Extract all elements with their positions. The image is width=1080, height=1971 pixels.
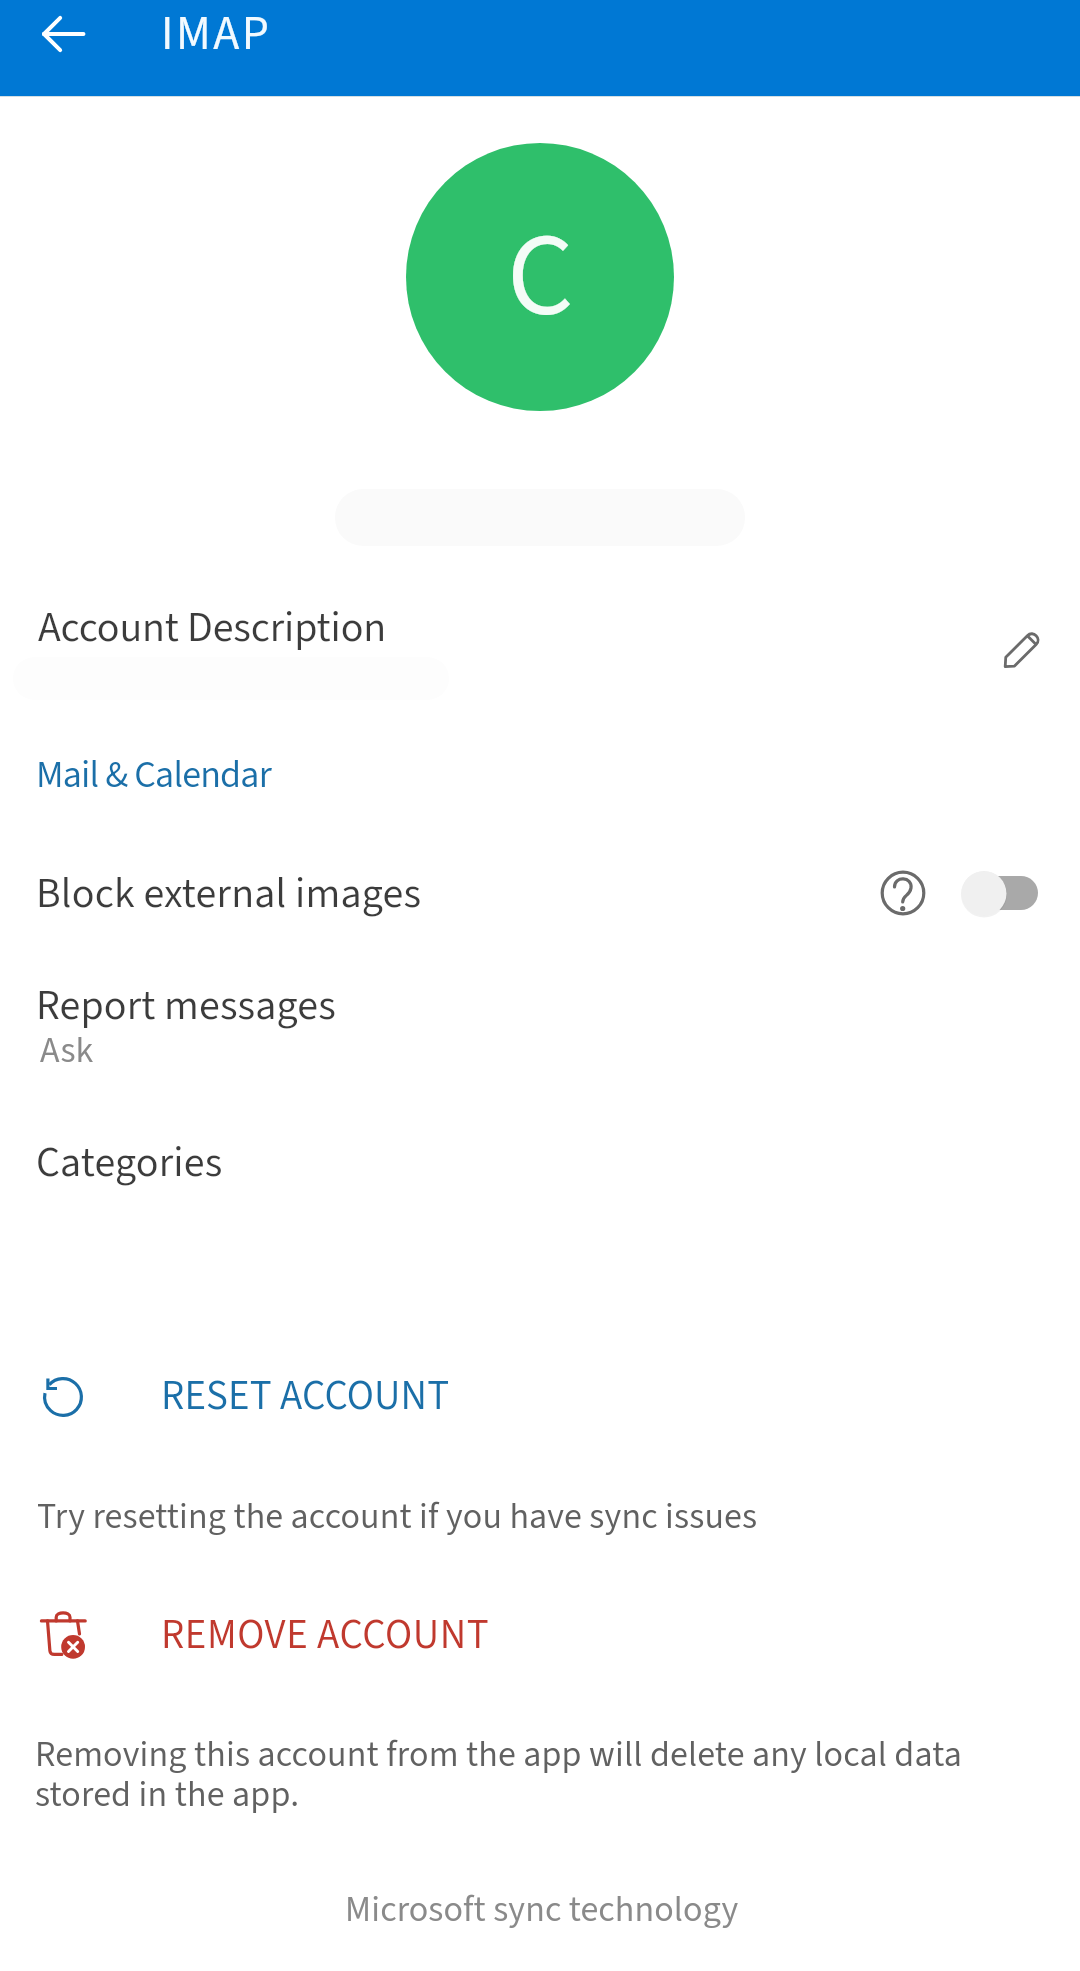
button[interactable]: Account Description [0,578,1080,682]
button[interactable]: Report messages [0,960,1080,1080]
staticText: RESET ACCOUNT [161,1367,450,1425]
button[interactable]: Edit account description [985,614,1057,686]
button[interactable]: RESET ACCOUNT [0,1356,1080,1442]
staticText: Microsoft sync technology [345,1884,739,1935]
staticText: IMAP [161,0,272,68]
staticText: Account Description [38,598,387,658]
staticText: Report messages [36,976,336,1036]
staticText: Ask [40,1025,94,1076]
button[interactable]: Categories [0,1118,1080,1214]
button[interactable]: Back [20,10,92,82]
staticText: C [507,194,574,361]
button[interactable]: Help about blocking external images [869,859,937,927]
staticText: Try resetting the account if you have sy… [37,1491,758,1542]
staticText: REMOVE ACCOUNT [161,1606,490,1664]
staticText: Categories [36,1133,223,1193]
staticText: Removing this account from the app will … [35,1729,975,1820]
button[interactable]: REMOVE ACCOUNT [0,1596,1080,1682]
button[interactable]: Block external images toggle, off [958,868,1043,918]
staticText: Mail & Calendar [36,748,271,802]
staticText: Block external images [36,864,422,924]
button[interactable]: Block external images [0,846,1080,940]
